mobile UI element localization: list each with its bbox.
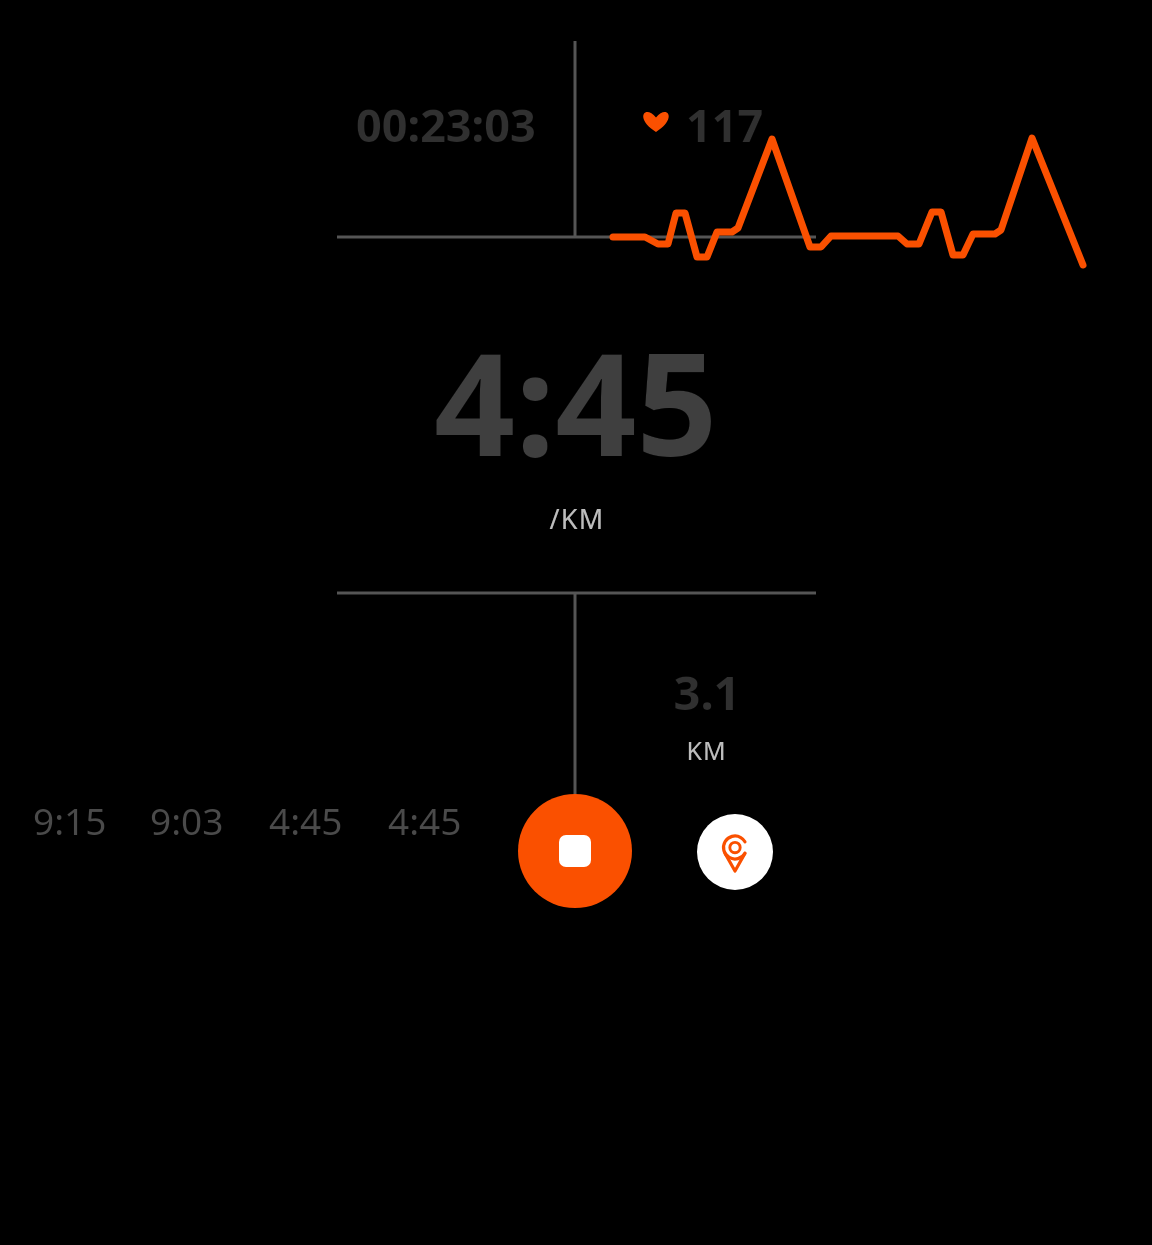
button[interactable]: GPS location	[697, 814, 773, 890]
button[interactable]: Stop workout	[518, 794, 632, 908]
